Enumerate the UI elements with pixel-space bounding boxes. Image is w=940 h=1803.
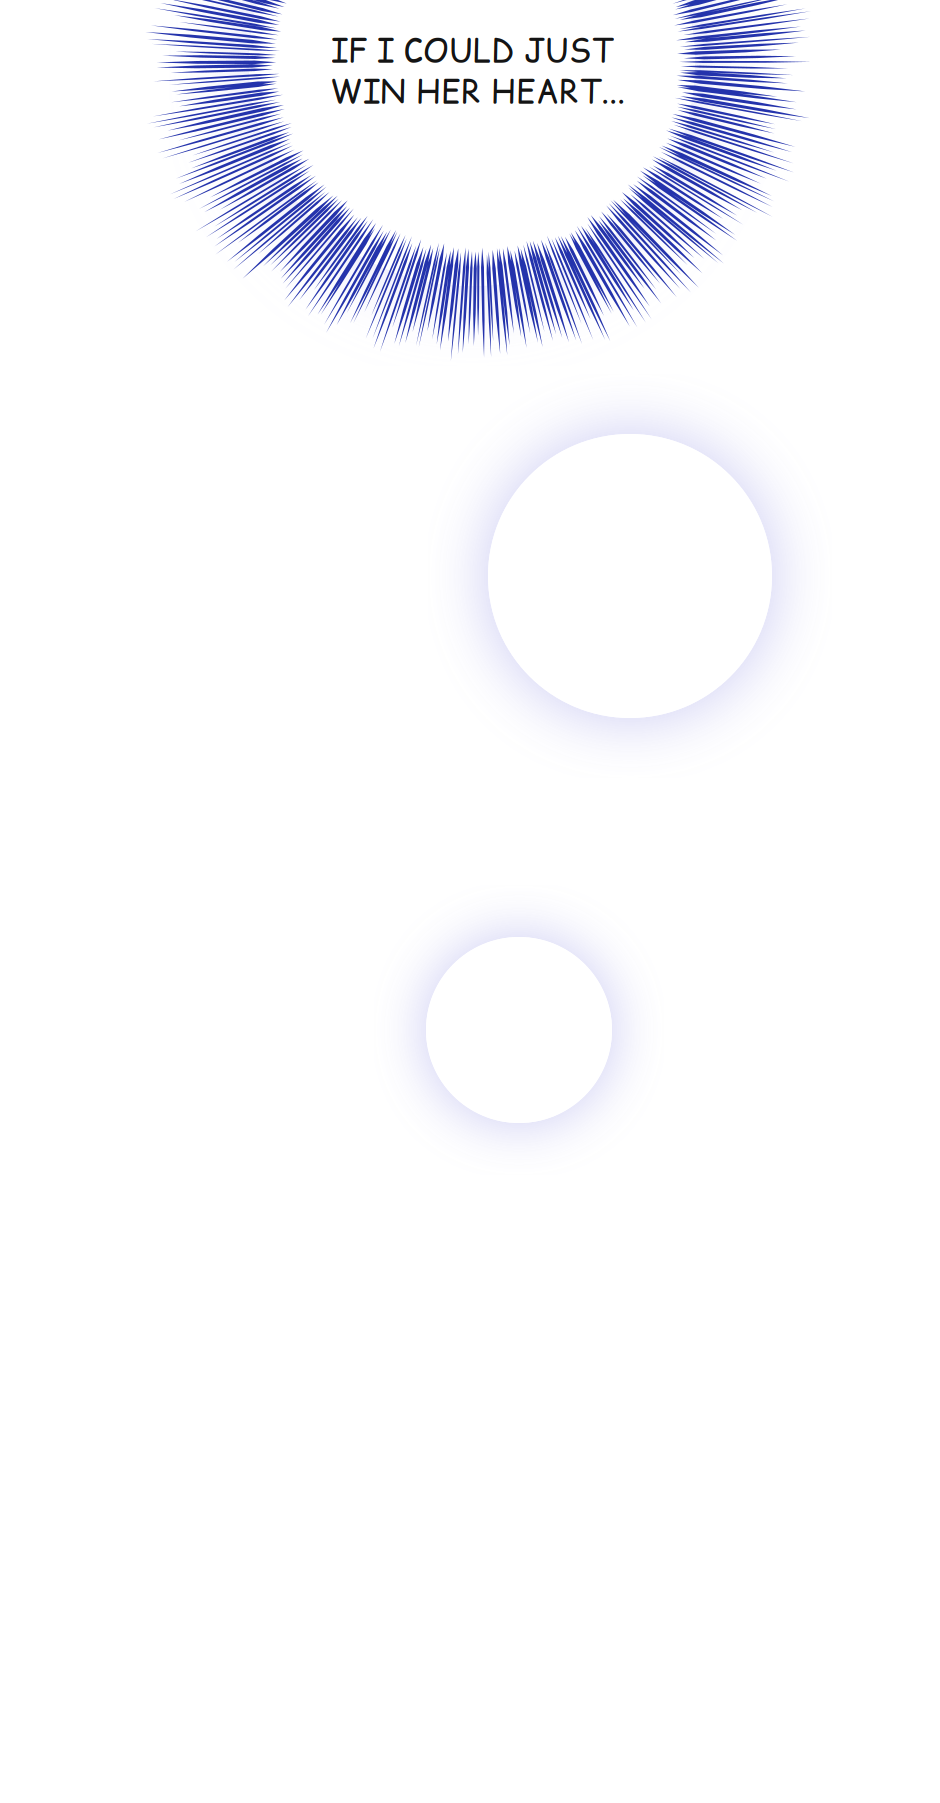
staticText: IF I COULD JUST [331, 28, 613, 73]
button[interactable]: Panel: IF I COULD JUST WIN HER HEART... [0, 0, 940, 1803]
staticText: WIN HER HEART... [330, 69, 625, 114]
